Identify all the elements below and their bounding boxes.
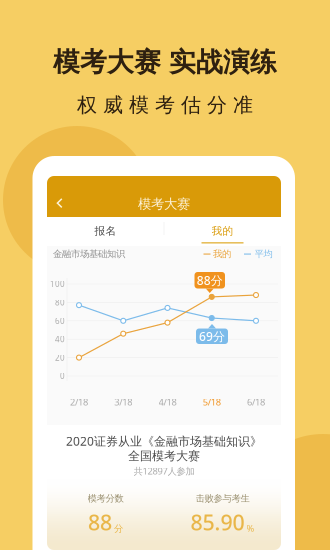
staticText: 击败参与考生 <box>195 493 249 504</box>
staticText: 模考大赛 <box>138 196 190 212</box>
staticText: 平均 <box>254 248 272 260</box>
button[interactable]: 报名 <box>47 217 164 245</box>
staticText: 5/18 <box>203 396 221 408</box>
staticText: 报名 <box>94 224 116 237</box>
staticText: 6/18 <box>247 396 265 408</box>
staticText: 共12897人参加 <box>133 465 194 477</box>
staticText: 模考分数 <box>87 493 123 504</box>
staticText: 80 <box>55 297 65 308</box>
staticText: 全国模考大赛 <box>128 449 200 463</box>
staticText: 我的 <box>211 224 233 237</box>
staticText: 88分 <box>197 272 223 288</box>
button[interactable]: 我的 <box>164 217 281 245</box>
staticText: 40 <box>55 334 65 344</box>
staticText: 4/18 <box>158 396 176 408</box>
staticText: 金融市场基础知识 <box>53 248 125 260</box>
staticText: 分 <box>114 523 123 534</box>
staticText: 88 <box>88 508 112 536</box>
staticText: 2/18 <box>70 396 88 408</box>
staticText: 权 威 模 考 估 分 准 <box>77 93 253 117</box>
staticText: 0 <box>60 371 65 381</box>
button[interactable]: Back <box>47 176 71 200</box>
staticText: 3/18 <box>114 396 132 408</box>
staticText: 2020证券从业《金融市场基础知识》 <box>66 433 262 449</box>
staticText: 60 <box>55 315 65 326</box>
staticText: % <box>246 522 254 534</box>
staticText: 模考大赛 实战演练 <box>53 46 277 78</box>
staticText: 85.90 <box>190 508 244 536</box>
staticText: 69分 <box>199 328 225 344</box>
staticText: 100 <box>50 279 65 289</box>
staticText: 我的 <box>213 248 231 260</box>
staticText: 20 <box>55 352 65 363</box>
